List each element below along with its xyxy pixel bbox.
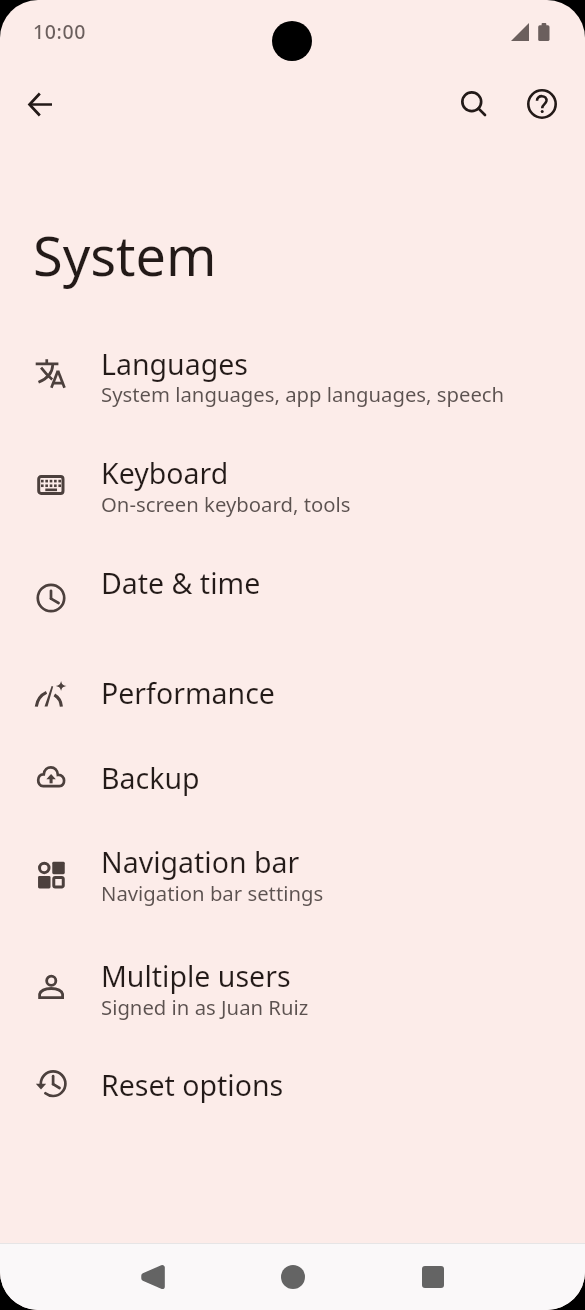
- staticText: Date & time: [101, 564, 261, 603]
- staticText: Keyboard: [101, 454, 229, 493]
- button[interactable]: Recents: [403, 1243, 463, 1310]
- button[interactable]: Backup: [0, 742, 585, 816]
- button[interactable]: Keyboard: [0, 447, 585, 521]
- staticText: On-screen keyboard, tools: [101, 490, 351, 518]
- staticText: Reset options: [101, 1066, 284, 1105]
- button[interactable]: Help: [514, 76, 570, 132]
- button[interactable]: Back: [122, 1243, 182, 1310]
- staticText: Multiple users: [101, 957, 291, 996]
- button[interactable]: Languages: [0, 337, 585, 411]
- staticText: Navigation bar settings: [101, 879, 324, 907]
- staticText: Signed in as Juan Ruiz: [101, 993, 309, 1021]
- button[interactable]: Performance: [0, 657, 585, 731]
- button[interactable]: Reset options: [0, 1049, 585, 1123]
- button[interactable]: Back: [12, 76, 68, 132]
- staticText: System languages, app languages, speech: [101, 380, 505, 408]
- staticText: Navigation bar: [101, 843, 300, 882]
- button[interactable]: Search: [445, 75, 501, 131]
- button[interactable]: Multiple users: [0, 949, 585, 1023]
- button[interactable]: Date & time: [0, 561, 585, 635]
- button[interactable]: Home: [263, 1243, 323, 1310]
- staticText: 10:00: [33, 18, 86, 45]
- staticText: Performance: [101, 674, 275, 713]
- button[interactable]: Navigation bar: [0, 838, 585, 912]
- staticText: Languages: [101, 345, 248, 384]
- staticText: System: [33, 218, 217, 292]
- staticText: Backup: [101, 759, 200, 798]
